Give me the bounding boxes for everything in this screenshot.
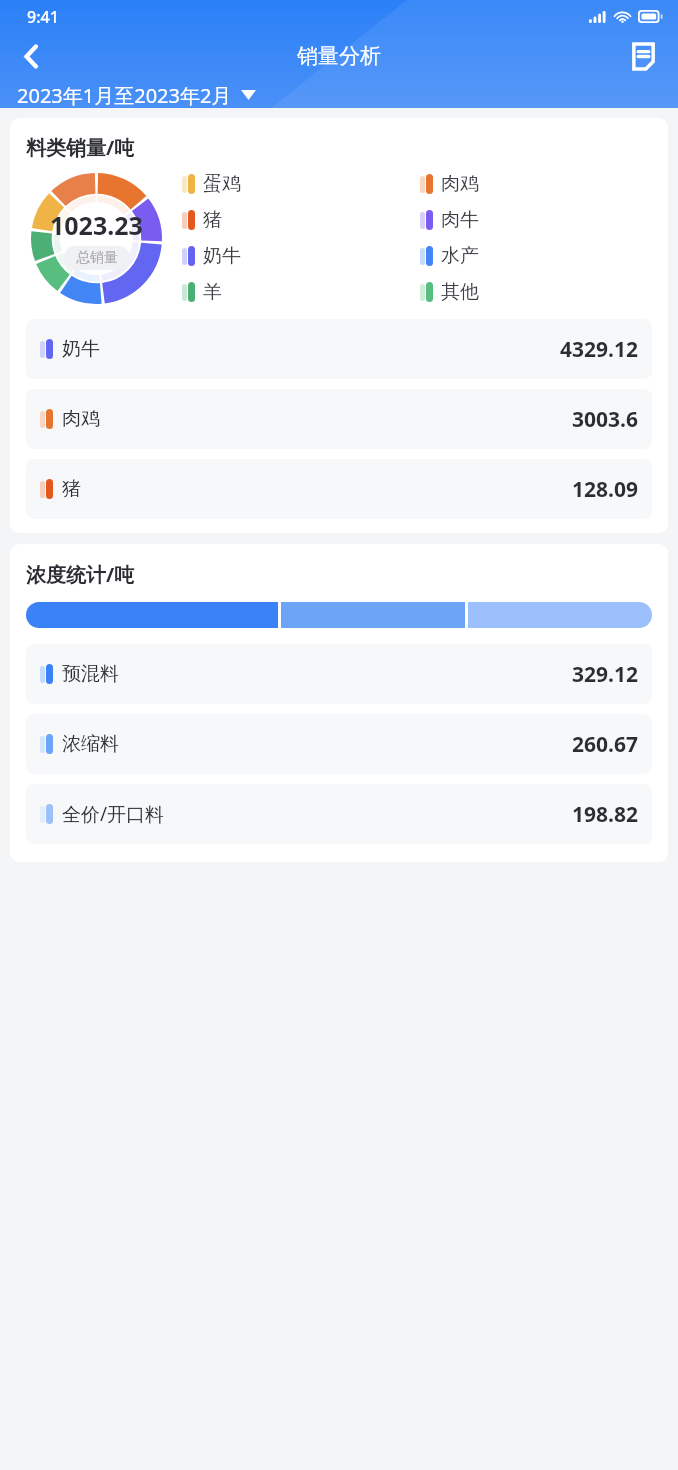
button[interactable]: Back: [13, 38, 49, 74]
staticText: 羊: [203, 280, 222, 304]
staticText: 全价/开口料: [62, 801, 165, 827]
button[interactable]: 2023年1月至2023年2月: [17, 82, 256, 108]
button[interactable]: 猪: [182, 208, 222, 232]
button[interactable]: [26, 602, 278, 628]
staticText: 料类销量/吨: [26, 134, 135, 161]
staticText: 329.12: [572, 660, 638, 689]
staticText: 198.82: [572, 800, 638, 829]
staticText: 其他: [441, 280, 479, 304]
staticText: 猪: [203, 208, 222, 232]
staticText: 奶牛: [62, 337, 100, 361]
staticText: 肉鸡: [62, 407, 100, 431]
staticText: 浓缩料: [62, 732, 119, 756]
button[interactable]: Report: [625, 38, 661, 74]
staticText: 猪: [62, 477, 81, 501]
button[interactable]: 奶牛: [182, 244, 241, 268]
button[interactable]: 蛋鸡: [182, 172, 241, 196]
staticText: 预混料: [62, 662, 119, 686]
button[interactable]: [468, 602, 652, 628]
staticText: 肉牛: [441, 208, 479, 232]
button[interactable]: 其他: [420, 280, 479, 304]
button[interactable]: 全价/开口料: [26, 784, 652, 844]
staticText: 2023年1月至2023年2月: [17, 82, 232, 108]
staticText: 总销量: [76, 249, 118, 267]
staticText: 4329.12: [560, 335, 638, 364]
staticText: 9:41: [27, 6, 59, 28]
button[interactable]: 羊: [182, 280, 222, 304]
button[interactable]: 奶牛: [26, 319, 652, 379]
staticText: 1023.23: [50, 208, 143, 242]
staticText: 260.67: [572, 730, 638, 759]
staticText: 蛋鸡: [203, 172, 241, 196]
button[interactable]: 预混料: [26, 644, 652, 704]
button[interactable]: 猪: [26, 459, 652, 519]
button[interactable]: 肉鸡: [420, 172, 479, 196]
staticText: 128.09: [572, 475, 638, 504]
staticText: 销量分析: [297, 43, 381, 69]
button[interactable]: 水产: [420, 244, 479, 268]
button[interactable]: 肉牛: [420, 208, 479, 232]
staticText: 水产: [441, 244, 479, 268]
staticText: 肉鸡: [441, 172, 479, 196]
button[interactable]: 肉鸡: [26, 389, 652, 449]
staticText: 奶牛: [203, 244, 241, 268]
staticText: 浓度统计/吨: [26, 561, 135, 588]
button[interactable]: 浓缩料: [26, 714, 652, 774]
staticText: 3003.6: [572, 405, 638, 434]
